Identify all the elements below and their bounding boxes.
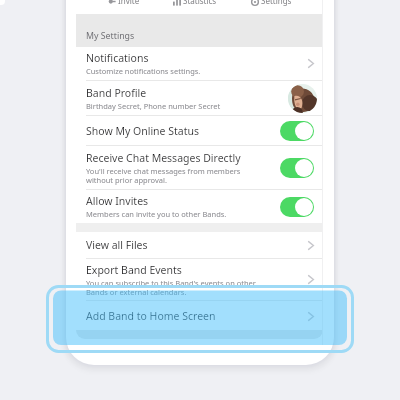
- button[interactable]: Receive Chat Messages Directly: [76, 146, 323, 189]
- staticText: Members can invite you to other Bands.: [86, 209, 227, 219]
- button[interactable]: Invite: [106, 0, 142, 6]
- button[interactable]: Show My Online Status: [76, 116, 323, 145]
- staticText: Customize notifications settings.: [86, 66, 201, 76]
- button[interactable]: Toggle on: [280, 121, 314, 141]
- button[interactable]: View all Files: [76, 232, 323, 258]
- button[interactable]: Add Band to Home Screen: [76, 301, 323, 331]
- staticText: You can subscribe to this Band's events …: [86, 278, 256, 297]
- button[interactable]: Statistics: [171, 0, 219, 6]
- button[interactable]: Export Band Events: [76, 259, 323, 300]
- staticText: My Settings: [86, 30, 135, 42]
- button[interactable]: Band Profile: [76, 81, 323, 115]
- staticText: You'll receive chat messages from member…: [86, 166, 241, 185]
- button[interactable]: Toggle on: [280, 158, 314, 178]
- staticText: Statistics: [183, 0, 217, 6]
- button[interactable]: Notifications: [76, 47, 323, 80]
- staticText: Receive Chat Messages Directly: [86, 151, 241, 165]
- button[interactable]: Toggle on: [280, 197, 314, 217]
- staticText: Band Profile: [86, 86, 147, 100]
- button[interactable]: Add Band to Home Screen highlight: [46, 286, 354, 353]
- button[interactable]: Settings: [249, 0, 294, 6]
- staticText: Settings: [261, 0, 292, 6]
- staticText: View all Files: [86, 238, 148, 252]
- staticText: Add Band to Home Screen: [86, 309, 216, 323]
- staticText: Birthday Secret, Phone number Secret: [86, 101, 221, 111]
- staticText: Show My Online Status: [86, 124, 199, 138]
- staticText: Invite: [118, 0, 140, 6]
- staticText: Export Band Events: [86, 263, 182, 277]
- staticText: Allow Invites: [86, 194, 149, 208]
- staticText: Notifications: [86, 51, 149, 65]
- button[interactable]: Allow Invites: [76, 190, 323, 223]
